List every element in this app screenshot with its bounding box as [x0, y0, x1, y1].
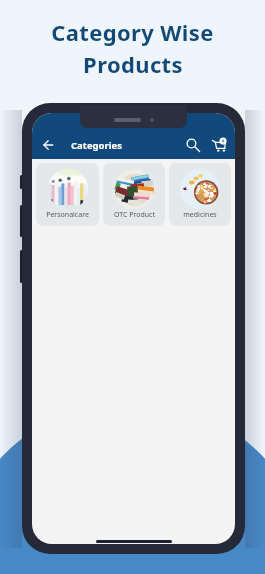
staticText: Category Wise	[51, 17, 214, 47]
staticText: medicines	[183, 210, 217, 220]
button[interactable]: medicines	[169, 163, 231, 226]
staticText: Categories	[71, 139, 123, 152]
button[interactable]: Back	[38, 135, 58, 155]
staticText: Products	[83, 49, 183, 79]
staticText: OTC Product	[114, 210, 155, 220]
button[interactable]: Personalcare	[36, 163, 99, 226]
staticText: Personalcare	[46, 210, 89, 220]
button[interactable]: OTC Product	[103, 163, 165, 226]
button[interactable]: Cart	[209, 135, 229, 155]
button[interactable]: Search	[183, 135, 203, 155]
